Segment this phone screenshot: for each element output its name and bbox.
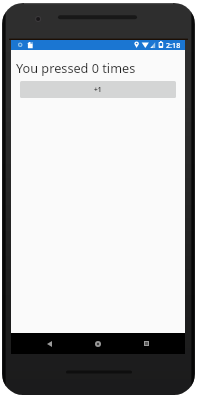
button[interactable]: Back [31,333,67,354]
staticText: +1 [94,85,102,94]
button[interactable]: Recent apps [128,333,164,354]
button[interactable]: +1 [20,81,176,98]
staticText: 2:18 [166,40,181,50]
staticText: You pressed 0 times [16,59,136,76]
button[interactable]: Home [80,333,116,354]
